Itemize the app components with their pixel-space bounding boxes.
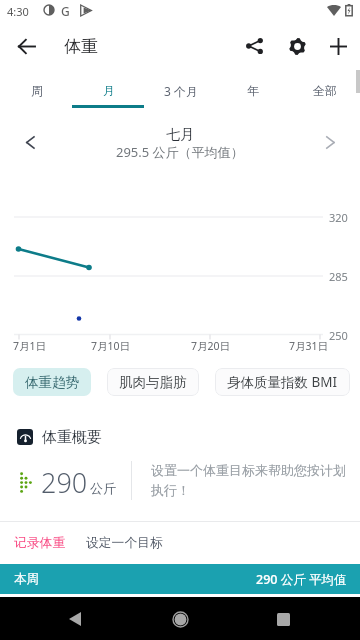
staticText: 体重 [64, 36, 98, 57]
button[interactable]: 身体质量指数 BMI [215, 368, 350, 396]
button[interactable]: Back [57, 601, 93, 637]
staticText: 记录体重 [14, 535, 66, 551]
staticText: 周 [31, 83, 43, 98]
staticText: G [61, 3, 70, 19]
staticText: 295.5 公斤（平均值） [116, 143, 244, 161]
staticText: 肌肉与脂肪 [119, 374, 187, 391]
button[interactable]: 设定一个目标 [78, 527, 171, 559]
staticText: 全部 [313, 83, 337, 98]
staticText: 7月20日 [191, 339, 231, 353]
staticText: 290 公斤 平均值 [256, 571, 347, 588]
button[interactable]: Recent apps [265, 601, 301, 637]
button[interactable]: Settings [277, 26, 317, 66]
staticText: 250 [329, 328, 348, 343]
button[interactable]: 本周 [0, 564, 360, 594]
button[interactable]: 年 [216, 70, 288, 109]
button[interactable]: Back [6, 26, 46, 66]
staticText: 身体质量指数 BMI [227, 373, 338, 391]
staticText: 4:30 [7, 4, 29, 19]
button[interactable]: 3 个月 [144, 70, 216, 109]
button[interactable]: Share [234, 26, 274, 66]
staticText: 月 [103, 83, 115, 98]
staticText: 公斤 [90, 480, 116, 496]
staticText: 3 个月 [164, 83, 198, 99]
button[interactable]: 月 [72, 70, 144, 109]
staticText: 本周 [14, 571, 39, 587]
staticText: 体重概要 [42, 428, 102, 447]
button[interactable]: Home [162, 601, 198, 637]
button[interactable]: 记录体重 [6, 527, 74, 559]
button[interactable]: 周 [0, 70, 72, 109]
staticText: 285 [329, 269, 348, 284]
staticText: 设置一个体重目标来帮助您按计划执行！ [151, 462, 350, 499]
staticText: 体重趋势 [25, 374, 79, 391]
button[interactable]: Next month [310, 122, 350, 162]
staticText: 7月31日 [289, 339, 329, 353]
button[interactable]: 肌肉与脂肪 [107, 368, 199, 396]
staticText: 7月10日 [91, 339, 131, 353]
button[interactable]: 体重趋势 [13, 368, 91, 396]
staticText: 320 [329, 210, 348, 225]
staticText: 七月 [166, 126, 194, 144]
button[interactable]: Previous month [10, 122, 50, 162]
button[interactable]: Add [318, 26, 358, 66]
staticText: 设定一个目标 [86, 535, 163, 551]
staticText: 7月1日 [13, 339, 47, 353]
staticText: 年 [247, 83, 259, 98]
button[interactable]: 全部 [288, 70, 360, 109]
staticText: 290 [41, 464, 88, 501]
